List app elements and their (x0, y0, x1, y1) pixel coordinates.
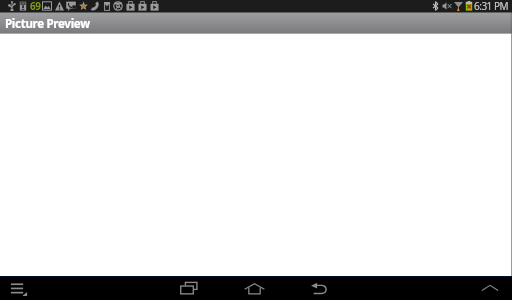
button[interactable]: Recent apps (180, 281, 198, 295)
staticText: 69 (30, 0, 41, 11)
button[interactable]: Expand (482, 284, 498, 294)
staticText: Picture Preview (5, 16, 90, 32)
button[interactable]: Menu (10, 282, 28, 296)
button[interactable]: Back (311, 282, 328, 295)
staticText: 6:31 PM (474, 0, 509, 11)
button[interactable]: Home (244, 282, 265, 295)
